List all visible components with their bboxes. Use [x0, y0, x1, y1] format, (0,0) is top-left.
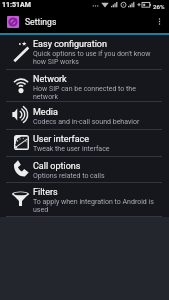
staticText: Settings	[25, 17, 57, 27]
staticText: Tweak the user interface	[33, 145, 110, 153]
staticText: 26%	[153, 3, 165, 10]
staticText: User interface	[33, 134, 90, 145]
staticText: Filters	[33, 187, 58, 198]
button[interactable]: Call options	[0, 157, 169, 183]
button[interactable]: Filters	[0, 183, 169, 217]
button[interactable]: Easy configuration	[0, 35, 169, 70]
staticText: Network	[33, 74, 67, 85]
staticText: 11:51AM	[2, 1, 31, 9]
button[interactable]: Media	[0, 102, 169, 130]
button[interactable]: User interface	[0, 130, 169, 157]
staticText: Call options	[33, 161, 81, 172]
staticText: How SIP can be connected to the network	[33, 85, 158, 101]
staticText: To apply when integration to Android is …	[33, 198, 158, 214]
staticText: Codecs and in-call sound behavior	[33, 118, 140, 126]
staticText: Quick options to use if you don't know h…	[33, 50, 158, 66]
button[interactable]: Network	[0, 70, 169, 102]
staticText: Options related to calls	[33, 172, 105, 180]
button[interactable]: More options	[149, 10, 169, 33]
staticText: Easy configuration	[33, 39, 107, 50]
staticText: Media	[33, 107, 58, 118]
